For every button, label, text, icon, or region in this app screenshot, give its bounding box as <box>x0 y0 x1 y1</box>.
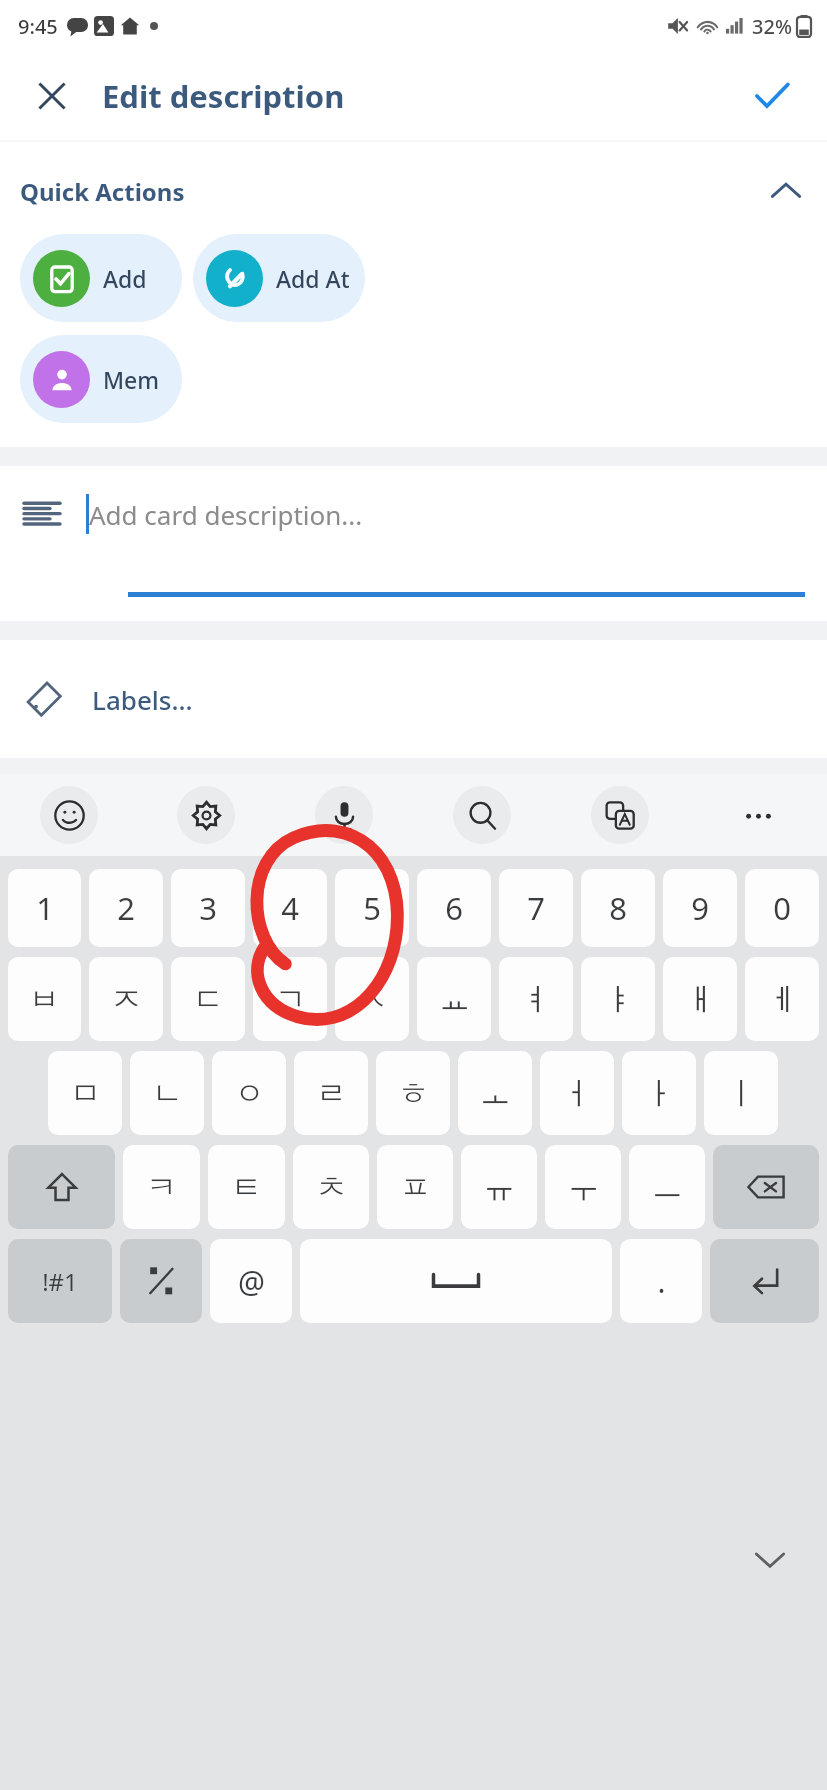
button[interactable]: ㄹ <box>294 1051 368 1135</box>
button[interactable]: ㅏ <box>622 1051 696 1135</box>
button[interactable]: ㅜ <box>545 1145 621 1229</box>
button[interactable]: 1 <box>8 869 81 947</box>
button[interactable]: ㅓ <box>540 1051 614 1135</box>
button[interactable]: ㅠ <box>461 1145 537 1229</box>
button[interactable]: ㄷ <box>171 957 245 1041</box>
button[interactable]: ㅗ <box>458 1051 532 1135</box>
button[interactable]: 9 <box>663 869 737 947</box>
staticText: ㅗ <box>480 1074 511 1113</box>
staticText: ㅇ <box>234 1074 265 1113</box>
button[interactable]: Backspace <box>713 1145 819 1229</box>
button[interactable]: ㅇ <box>212 1051 286 1135</box>
button[interactable]: ㅂ <box>8 957 81 1041</box>
staticText: ㅋ <box>146 1168 177 1207</box>
staticText: Add Checklist <box>103 263 168 294</box>
button[interactable]: Close <box>24 68 80 124</box>
staticText: ㄱ <box>275 980 306 1019</box>
staticText: @ <box>238 1261 265 1302</box>
button[interactable]: Add Attachment <box>193 234 365 322</box>
button[interactable]: Add Checklist <box>20 234 182 322</box>
button[interactable]: 2 <box>89 869 163 947</box>
staticText: ㄷ <box>193 980 224 1019</box>
staticText: 1 <box>36 887 54 929</box>
staticText: ㅅ <box>357 980 388 1019</box>
staticText: 9 <box>691 887 709 929</box>
staticText: !#1 <box>42 1265 78 1298</box>
staticText: 7 <box>527 887 545 929</box>
button[interactable]: Shift <box>8 1145 115 1229</box>
staticText: ㅑ <box>603 980 634 1019</box>
button[interactable]: 6 <box>417 869 491 947</box>
button[interactable]: ㅊ <box>293 1145 369 1229</box>
button[interactable]: Keyboard settings <box>177 786 235 844</box>
button[interactable]: 0 <box>745 869 819 947</box>
staticText: ㅁ <box>70 1074 101 1113</box>
button[interactable]: Translate <box>591 786 649 844</box>
button[interactable]: ㅎ <box>376 1051 450 1135</box>
button[interactable]: ㅅ <box>335 957 409 1041</box>
staticText: ㅐ <box>685 980 716 1019</box>
staticText: 2 <box>117 887 135 929</box>
button[interactable]: 8 <box>581 869 655 947</box>
button[interactable]: Search <box>453 786 511 844</box>
button[interactable]: More options <box>729 786 787 844</box>
button[interactable]: Space <box>300 1239 612 1323</box>
staticText: Edit description <box>102 75 345 117</box>
button[interactable]: Emoji <box>40 786 98 844</box>
staticText: ㅓ <box>562 1074 593 1113</box>
button[interactable]: ㅁ <box>48 1051 122 1135</box>
staticText: ㅛ <box>439 980 470 1019</box>
button[interactable]: ㅕ <box>499 957 573 1041</box>
staticText: ㅡ <box>652 1168 683 1207</box>
button[interactable]: @ <box>210 1239 292 1323</box>
button[interactable]: ㅐ <box>663 957 737 1041</box>
staticText: 3 <box>199 887 217 929</box>
staticText: ㅠ <box>484 1168 515 1207</box>
staticText: ㅎ <box>398 1074 429 1113</box>
button[interactable]: Voice input <box>315 786 373 844</box>
button[interactable]: Hide keyboard <box>743 1532 797 1586</box>
staticText: ㅜ <box>568 1168 599 1207</box>
staticText: Quick Actions <box>20 175 185 208</box>
button[interactable]: !#1 <box>8 1239 112 1323</box>
staticText: Add card description... <box>89 497 363 532</box>
staticText: ㄴ <box>152 1074 183 1113</box>
button[interactable]: . <box>620 1239 702 1323</box>
button[interactable]: 5 <box>335 869 409 947</box>
staticText: 9:45 <box>18 13 58 40</box>
button[interactable]: Enter <box>710 1239 819 1323</box>
staticText: ㅌ <box>231 1168 262 1207</box>
staticText: 32% <box>752 13 792 40</box>
staticText: Labels... <box>92 682 193 717</box>
button[interactable]: ㅈ <box>89 957 163 1041</box>
button[interactable]: Members <box>20 335 182 423</box>
staticText: ㅕ <box>521 980 552 1019</box>
button[interactable]: ㅣ <box>704 1051 778 1135</box>
staticText: 6 <box>445 887 463 929</box>
button[interactable]: ㅍ <box>377 1145 453 1229</box>
button[interactable]: ㅌ <box>208 1145 285 1229</box>
staticText: ㅊ <box>316 1168 347 1207</box>
staticText: ㅏ <box>644 1074 675 1113</box>
button[interactable]: ㄱ <box>253 957 327 1041</box>
button[interactable]: 7 <box>499 869 573 947</box>
button[interactable]: ㅡ <box>629 1145 705 1229</box>
button[interactable]: 4 <box>253 869 327 947</box>
button[interactable]: Save <box>743 67 801 125</box>
staticText: ㄹ <box>316 1074 347 1113</box>
button[interactable]: 3 <box>171 869 245 947</box>
button[interactable]: Labels... <box>22 640 805 758</box>
button[interactable]: Quick Actions <box>20 166 803 216</box>
staticText: ㅔ <box>767 980 798 1019</box>
button[interactable]: Change language <box>120 1239 202 1323</box>
staticText: ㅣ <box>726 1074 757 1113</box>
staticText: 5 <box>363 887 381 929</box>
button[interactable]: ㄴ <box>130 1051 204 1135</box>
button[interactable]: ㅛ <box>417 957 491 1041</box>
button[interactable]: ㅔ <box>745 957 819 1041</box>
button[interactable]: ㅋ <box>123 1145 200 1229</box>
button[interactable]: ㅑ <box>581 957 655 1041</box>
staticText: ㅂ <box>29 980 60 1019</box>
staticText: . <box>657 1261 666 1302</box>
staticText: ㅈ <box>111 980 142 1019</box>
